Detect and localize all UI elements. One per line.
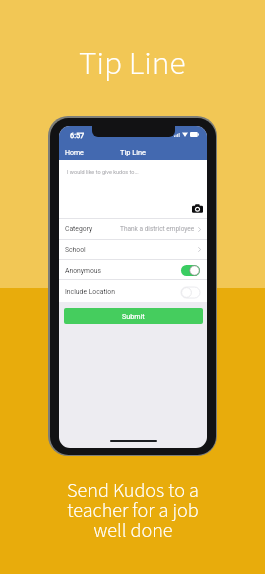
button[interactable]: Category [59, 219, 207, 239]
button[interactable]: Home [59, 149, 89, 157]
button[interactable]: Include Location [59, 280, 207, 302]
staticText: Submit [122, 312, 145, 320]
staticText: School [65, 246, 86, 254]
staticText: Home [65, 149, 84, 157]
button[interactable]: Submit [64, 308, 203, 324]
button[interactable]: School [59, 240, 207, 259]
staticText: Category [65, 225, 93, 233]
staticText: 6:57 [70, 131, 85, 140]
staticText: Anonymous [65, 267, 102, 275]
staticText: I would like to give kudos to... [67, 169, 139, 175]
button[interactable]: Anonymous [59, 260, 207, 279]
staticText: Tip Line [79, 40, 186, 87]
staticText: Include Location [65, 288, 115, 296]
button[interactable] [181, 265, 200, 276]
staticText: Send Kudos to a teacher for a job well d… [62, 476, 204, 545]
staticText: Thank a district employee [120, 225, 195, 233]
button[interactable]: Add photo [192, 204, 203, 214]
staticText: Tip Line [120, 148, 146, 157]
button[interactable] [181, 287, 200, 298]
